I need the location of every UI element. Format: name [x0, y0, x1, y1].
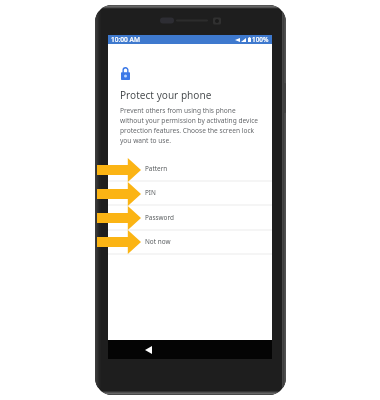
- staticText: 10:00 AM: [111, 35, 140, 44]
- button[interactable]: Not now: [108, 230, 272, 255]
- staticText: Password: [145, 213, 174, 222]
- staticText: Protect your phone: [120, 88, 212, 102]
- button[interactable]: Back: [142, 343, 155, 356]
- button[interactable]: Pattern: [108, 157, 272, 182]
- button[interactable]: Password: [108, 206, 272, 231]
- staticText: Prevent others from using this phone wit…: [120, 106, 259, 145]
- staticText: 100%: [252, 35, 269, 44]
- staticText: Not now: [145, 237, 171, 246]
- button[interactable]: PIN: [108, 181, 272, 206]
- staticText: Pattern: [145, 164, 168, 173]
- staticText: PIN: [145, 188, 156, 197]
